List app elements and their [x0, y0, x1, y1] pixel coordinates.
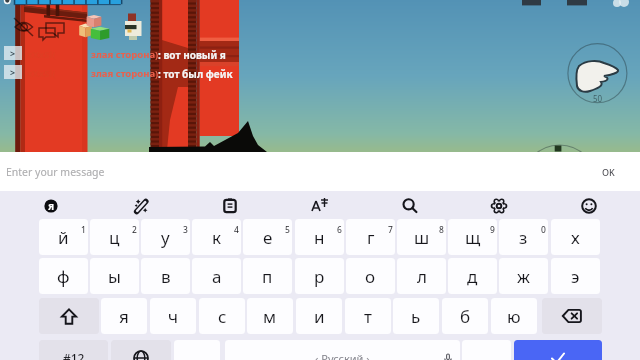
button[interactable]: ц	[90, 219, 139, 255]
staticText: 5	[285, 224, 290, 236]
button[interactable]: м	[247, 298, 293, 334]
staticText: 0	[541, 224, 546, 236]
staticText: х	[571, 226, 580, 249]
staticText: 2	[132, 224, 137, 236]
staticText: Enter your message	[6, 165, 105, 179]
staticText: у	[161, 226, 170, 249]
button[interactable]: ‹ Русский ›	[225, 340, 460, 360]
staticText: м	[263, 305, 277, 328]
staticText: ц	[109, 226, 120, 249]
staticText: в	[161, 265, 171, 288]
button[interactable]: т	[345, 298, 391, 334]
button[interactable]: я	[101, 298, 147, 334]
staticText: т	[364, 305, 372, 328]
button[interactable]: ю	[491, 298, 537, 334]
staticText: 50	[593, 93, 603, 104]
staticText: ь	[411, 305, 421, 328]
staticText: ю	[507, 305, 521, 328]
button[interactable]: OK	[602, 166, 615, 178]
staticText: Я	[48, 200, 55, 212]
button[interactable]: Clipboard	[216, 192, 244, 220]
button[interactable]: д	[448, 258, 497, 294]
button[interactable]: ш	[397, 219, 446, 255]
staticText: OK	[602, 166, 615, 178]
button[interactable]: и	[296, 298, 342, 334]
staticText: 6	[337, 224, 342, 236]
staticText: #12	[63, 350, 85, 360]
staticText: 7	[388, 224, 393, 236]
button[interactable]: х	[551, 219, 600, 255]
button[interactable]: с	[199, 298, 245, 334]
staticText: : вот новый я	[158, 48, 226, 62]
button[interactable]: ж	[499, 258, 548, 294]
staticText: э	[571, 265, 580, 288]
button[interactable]: Expand message	[4, 46, 22, 60]
button[interactable]: ы	[90, 258, 139, 294]
staticText: 3	[183, 224, 188, 236]
button[interactable]: Emoji	[575, 192, 603, 220]
staticText: о	[365, 265, 376, 288]
staticText: й	[58, 226, 69, 249]
staticText: ‹ Русский ›	[315, 351, 370, 360]
button[interactable]: л	[397, 258, 446, 294]
button[interactable]: Yandex	[37, 192, 65, 220]
staticText: а	[212, 265, 222, 288]
button[interactable]: г	[346, 219, 395, 255]
button[interactable]: й	[39, 219, 88, 255]
staticText: 9	[490, 224, 495, 236]
button[interactable]: в	[141, 258, 190, 294]
button[interactable]: з	[499, 219, 548, 255]
button[interactable]: Translate	[306, 192, 334, 220]
staticText: 1	[81, 224, 86, 236]
button[interactable]: п	[243, 258, 292, 294]
staticText: л	[417, 265, 427, 288]
button[interactable]: н	[295, 219, 344, 255]
staticText: г	[367, 226, 375, 249]
staticText: к	[212, 226, 222, 249]
button[interactable]: Backspace	[542, 298, 602, 334]
staticText: з	[519, 226, 528, 249]
button[interactable]: щ	[448, 219, 497, 255]
staticText: с	[218, 305, 227, 328]
button[interactable]: б	[442, 298, 488, 334]
button[interactable]: р	[295, 258, 344, 294]
button[interactable]: Search	[396, 192, 424, 220]
staticText: >	[10, 66, 16, 78]
staticText: н	[314, 226, 325, 249]
staticText: я	[119, 305, 129, 328]
staticText: : тот был фейк	[158, 67, 233, 81]
button[interactable]: к	[192, 219, 241, 255]
button[interactable]: ч	[150, 298, 196, 334]
staticText: ж	[517, 265, 530, 288]
button[interactable]: а	[192, 258, 241, 294]
staticText: щ	[465, 226, 481, 249]
button[interactable]: у	[141, 219, 190, 255]
button[interactable]: Settings	[485, 192, 513, 220]
staticText: п	[262, 265, 273, 288]
button[interactable]: Shift	[39, 298, 99, 334]
button[interactable]: Magic	[127, 192, 155, 220]
staticText: >	[10, 47, 16, 59]
button[interactable]: Change language	[111, 340, 171, 360]
staticText: д	[467, 265, 478, 288]
button[interactable]: ь	[393, 298, 439, 334]
staticText: е	[263, 226, 273, 249]
button[interactable]: #12	[39, 340, 108, 360]
button[interactable]: ф	[39, 258, 88, 294]
staticText: б	[460, 305, 471, 328]
staticText: ф	[57, 265, 70, 288]
button[interactable]: э	[551, 258, 600, 294]
button[interactable]: Enter	[514, 340, 602, 360]
button[interactable]: Expand message	[4, 65, 22, 79]
button[interactable]: о	[346, 258, 395, 294]
staticText: ы	[108, 265, 121, 288]
staticText: и	[314, 305, 325, 328]
staticText: злая сторона)	[91, 67, 159, 80]
button[interactable]: е	[243, 219, 292, 255]
